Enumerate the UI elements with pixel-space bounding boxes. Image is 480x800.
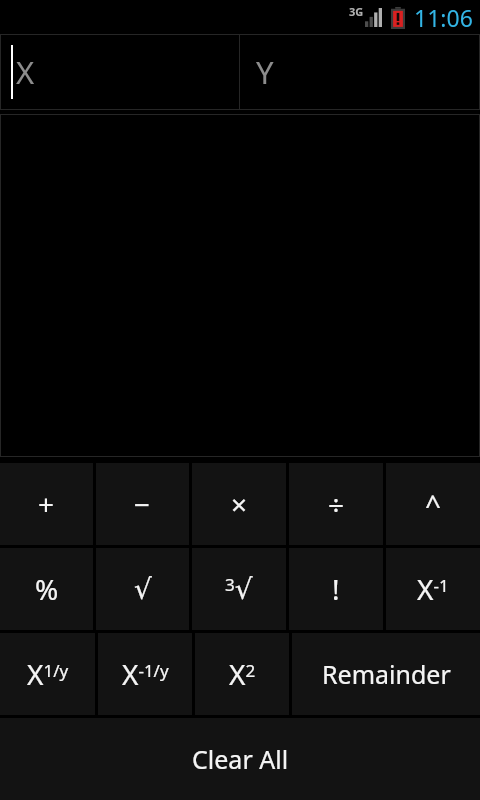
- staticText: −: [134, 485, 151, 523]
- button[interactable]: Y: [240, 34, 480, 110]
- button[interactable]: Remainder: [292, 633, 480, 715]
- button[interactable]: ÷: [289, 463, 383, 545]
- button[interactable]: X1/y: [0, 633, 95, 715]
- button[interactable]: %: [0, 548, 93, 630]
- button[interactable]: 3√: [192, 548, 286, 630]
- staticText: X-1: [417, 570, 449, 608]
- staticText: %: [35, 570, 59, 608]
- button[interactable]: X2: [195, 633, 289, 715]
- button[interactable]: Result display: [0, 114, 480, 457]
- button[interactable]: ^: [386, 463, 480, 545]
- button[interactable]: X-1: [386, 548, 480, 630]
- button[interactable]: X-1/y: [98, 633, 192, 715]
- button[interactable]: √: [96, 548, 189, 630]
- button[interactable]: −: [96, 463, 189, 545]
- staticText: Clear All: [192, 742, 289, 776]
- staticText: 11:06: [414, 2, 473, 33]
- staticText: 3√: [225, 573, 253, 606]
- staticText: X1/y: [27, 655, 69, 693]
- staticText: ×: [231, 485, 248, 523]
- staticText: X-1/y: [122, 655, 169, 693]
- staticText: Remainder: [322, 657, 451, 691]
- staticText: X2: [229, 655, 256, 693]
- staticText: ÷: [328, 485, 345, 523]
- button[interactable]: X: [0, 34, 239, 110]
- button[interactable]: Clear All: [0, 718, 480, 800]
- staticText: X: [16, 51, 35, 93]
- staticText: +: [38, 485, 55, 523]
- staticText: 3G: [349, 4, 364, 19]
- button[interactable]: +: [0, 463, 93, 545]
- staticText: ^: [425, 485, 442, 523]
- staticText: √: [134, 573, 152, 606]
- other: Battery low: [391, 7, 405, 29]
- button[interactable]: !: [289, 548, 383, 630]
- button[interactable]: ×: [192, 463, 286, 545]
- staticText: Y: [256, 51, 274, 93]
- staticText: !: [332, 570, 340, 608]
